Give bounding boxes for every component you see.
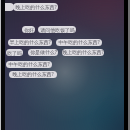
button[interactable]: 早上吃的什么东西?: [8, 39, 52, 46]
button[interactable]: 中午吃的什么东西?: [6, 61, 52, 68]
button[interactable]: [0, 3, 14, 11]
button[interactable]: 你是做什么?: [28, 49, 58, 56]
staticText: 你是做什么?: [30, 49, 57, 56]
staticText: 中午吃的什么东西?: [58, 39, 100, 46]
button[interactable]: 请问他吃饭了吗: [38, 26, 76, 33]
button[interactable]: 你好: [22, 26, 35, 33]
button[interactable]: 晚上吃的什么东西?: [9, 71, 57, 78]
staticText: 中午吃的什么东西?: [8, 61, 50, 68]
button[interactable]: 晚上吃的什么东西?: [62, 49, 104, 56]
button[interactable]: 晚上吃的什么东西?: [13, 3, 58, 11]
staticText: 早上吃的什么东西?: [9, 39, 51, 46]
button[interactable]: 中午吃的什么东西?: [56, 39, 102, 46]
staticText: 晚上吃的什么东西?: [12, 71, 54, 78]
staticText: 吃了吗: [7, 50, 22, 56]
button[interactable]: 吃了吗: [6, 49, 23, 56]
staticText: 请问他吃饭了吗: [40, 27, 75, 33]
staticText: 晚上吃的什么东西?: [62, 49, 104, 56]
staticText: 你好: [24, 27, 34, 33]
staticText: 晚上吃的什么东西?: [15, 4, 57, 11]
